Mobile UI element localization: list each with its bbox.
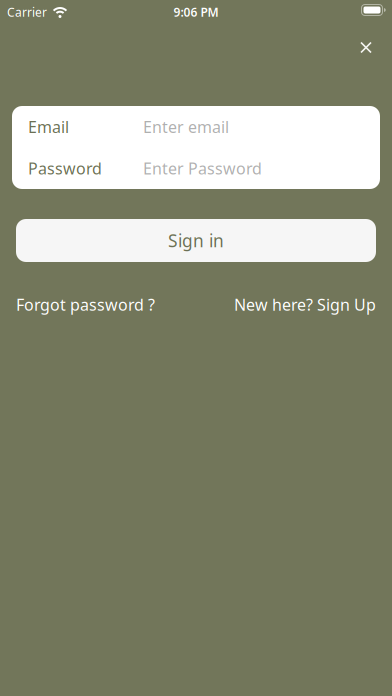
staticText: Enter Password bbox=[143, 158, 262, 179]
button[interactable]: Sign in bbox=[16, 219, 376, 262]
staticText: Email bbox=[28, 116, 69, 137]
button[interactable]: New here? Sign Up bbox=[234, 294, 376, 315]
button[interactable]: Close bbox=[352, 34, 379, 61]
staticText: Carrier bbox=[7, 4, 47, 20]
staticText: Password bbox=[28, 158, 102, 179]
button[interactable]: Forgot password ? bbox=[16, 294, 155, 315]
staticText: 9:06 PM bbox=[173, 4, 218, 20]
staticText: Enter email bbox=[143, 116, 229, 137]
staticText: Sign in bbox=[168, 229, 224, 252]
staticText: Forgot password ? bbox=[16, 294, 155, 315]
staticText: New here? Sign Up bbox=[234, 294, 376, 315]
